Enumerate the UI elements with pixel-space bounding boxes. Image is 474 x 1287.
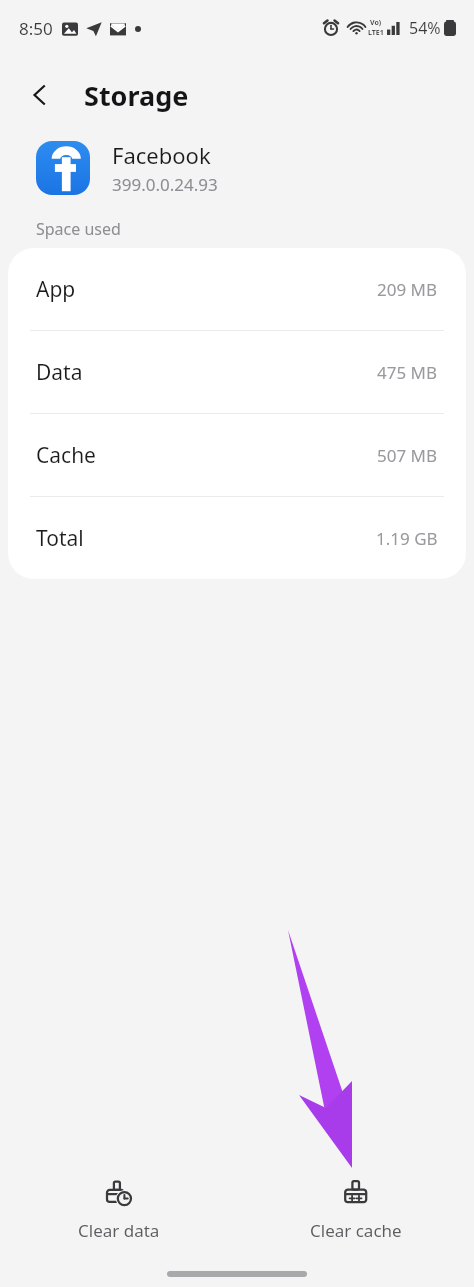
staticText: Data bbox=[36, 358, 83, 387]
staticText: 8:50 bbox=[19, 17, 53, 40]
button[interactable]: Data bbox=[8, 331, 466, 413]
staticText: 54% bbox=[409, 17, 441, 39]
button[interactable]: App bbox=[8, 248, 466, 330]
staticText: Clear data bbox=[78, 1219, 160, 1242]
staticText: App bbox=[36, 275, 76, 304]
staticText: 507 MB bbox=[377, 444, 438, 467]
staticText: Cache bbox=[36, 441, 96, 470]
staticText: Vo) bbox=[370, 18, 382, 28]
staticText: 475 MB bbox=[377, 361, 438, 384]
staticText: Total bbox=[36, 524, 84, 553]
button[interactable]: Clear data bbox=[0, 1165, 237, 1257]
staticText: Clear cache bbox=[310, 1219, 402, 1242]
staticText: 399.0.0.24.93 bbox=[112, 173, 218, 196]
staticText: Storage bbox=[84, 77, 189, 114]
staticText: LTE1 bbox=[368, 28, 384, 38]
button[interactable]: Back bbox=[16, 71, 64, 119]
button[interactable]: Cache bbox=[8, 414, 466, 496]
staticText: 209 MB bbox=[377, 278, 438, 301]
staticText: Space used bbox=[36, 218, 121, 240]
staticText: Facebook bbox=[112, 140, 211, 170]
staticText: 1.19 GB bbox=[376, 527, 438, 550]
button[interactable]: Total bbox=[8, 497, 466, 579]
button[interactable]: Clear cache bbox=[237, 1165, 474, 1257]
